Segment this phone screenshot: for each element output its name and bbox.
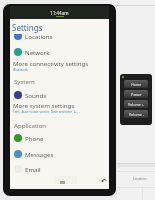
button[interactable]: Network	[14, 46, 113, 58]
staticText: Application	[14, 121, 47, 129]
staticText: Home	[131, 82, 142, 87]
staticText: Location	[133, 176, 147, 181]
button[interactable]: More connectivity settings	[13, 58, 112, 72]
staticText: Email	[25, 165, 41, 173]
staticText: Phone	[25, 134, 44, 142]
button[interactable]: Email	[14, 163, 113, 175]
button[interactable]: Locations	[14, 30, 113, 42]
button[interactable]: More system settings	[13, 100, 112, 114]
button[interactable]: Volume -	[124, 110, 148, 118]
staticText: Settings	[12, 22, 43, 33]
button[interactable]: Phone	[14, 132, 113, 144]
staticText: More system settings	[13, 101, 75, 109]
staticText: More connectivity settings	[13, 59, 89, 67]
staticText: Volume -	[129, 112, 144, 117]
button[interactable]: Home	[124, 80, 148, 88]
button[interactable]	[54, 176, 77, 184]
button[interactable]: Back	[100, 177, 108, 185]
button[interactable]: Messages	[14, 148, 113, 160]
button[interactable]: Volume +	[124, 100, 148, 108]
staticText: Locations	[25, 32, 53, 40]
staticText: Volume +	[128, 102, 144, 107]
button[interactable]: Sounds	[14, 89, 113, 101]
staticText: Bluetooth	[13, 68, 28, 72]
button[interactable]: Power	[124, 90, 148, 98]
staticText: Network	[25, 48, 50, 56]
staticText: Font, Auto rotate screen, Date and time,…	[13, 110, 78, 114]
staticText: Messages	[25, 150, 54, 158]
staticText: Power	[131, 92, 142, 97]
staticText: System	[14, 77, 35, 85]
staticText: Sounds	[25, 91, 47, 99]
staticText: 11:44am	[50, 10, 69, 16]
